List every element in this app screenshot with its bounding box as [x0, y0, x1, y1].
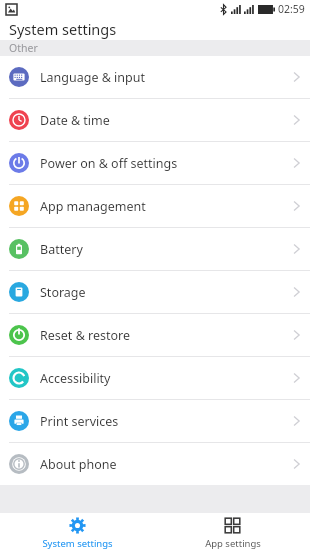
staticText: Other: [9, 41, 38, 55]
staticText: System settings: [9, 19, 117, 39]
button[interactable]: Storage: [0, 271, 310, 313]
staticText: Storage: [40, 284, 86, 301]
staticText: App management: [40, 198, 146, 215]
button[interactable]: Language & input: [0, 56, 310, 98]
button[interactable]: Accessibility: [0, 357, 310, 399]
button[interactable]: App settings: [155, 513, 310, 551]
staticText: Accessibility: [40, 370, 111, 387]
staticText: System settings: [42, 537, 113, 550]
staticText: Reset & restore: [40, 327, 131, 344]
staticText: App settings: [205, 537, 261, 550]
staticText: Battery: [40, 241, 83, 258]
button[interactable]: Power on & off settings: [0, 142, 310, 184]
staticText: Date & time: [40, 112, 110, 129]
button[interactable]: System settings: [0, 513, 155, 551]
button[interactable]: Reset & restore: [0, 314, 310, 356]
staticText: Power on & off settings: [40, 155, 178, 172]
staticText: 02:59: [278, 2, 305, 16]
button[interactable]: About phone: [0, 443, 310, 485]
staticText: About phone: [40, 456, 117, 473]
staticText: Language & input: [40, 69, 145, 86]
button[interactable]: Print services: [0, 400, 310, 442]
staticText: Print services: [40, 413, 119, 430]
button[interactable]: App management: [0, 185, 310, 227]
button[interactable]: Date & time: [0, 99, 310, 141]
button[interactable]: Battery: [0, 228, 310, 270]
